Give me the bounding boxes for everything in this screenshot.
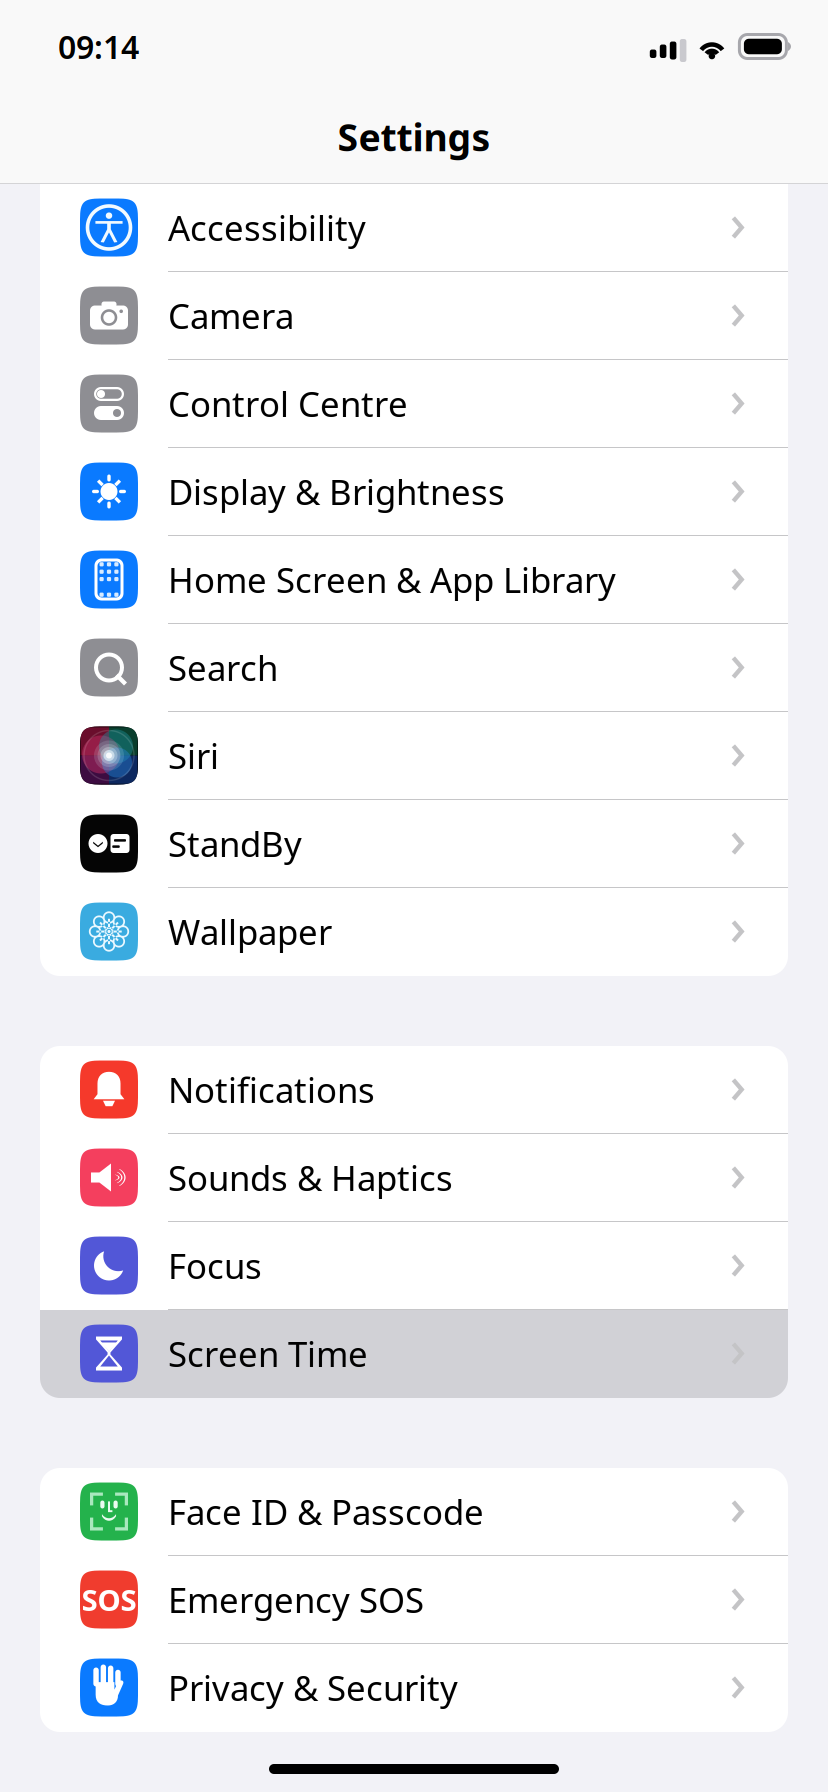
button[interactable]: SOS [40, 1556, 788, 1644]
staticText: Settings [337, 112, 490, 161]
staticText: Home Screen & App Library [168, 556, 616, 602]
button[interactable]: Notifications [40, 1046, 788, 1134]
button[interactable]: Search [40, 624, 788, 712]
staticText: Screen Time [168, 1330, 368, 1376]
staticText: Focus [168, 1242, 262, 1288]
staticText: Search [168, 644, 278, 690]
staticText: StandBy [168, 820, 302, 866]
staticText: Siri [168, 732, 219, 778]
staticText: Wallpaper [168, 908, 332, 954]
button[interactable]: Face ID & Passcode [40, 1468, 788, 1556]
staticText: 09:14 [58, 25, 139, 68]
staticText: Emergency SOS [168, 1576, 424, 1622]
staticText: Sounds & Haptics [168, 1154, 453, 1200]
button[interactable]: StandBy [40, 800, 788, 888]
staticText: Face ID & Passcode [168, 1488, 484, 1534]
button[interactable]: Focus [40, 1222, 788, 1310]
button[interactable]: Control Centre [40, 360, 788, 448]
button[interactable]: Siri [40, 712, 788, 800]
staticText: Privacy & Security [168, 1664, 458, 1710]
staticText: Display & Brightness [168, 468, 505, 514]
staticText: Control Centre [168, 380, 408, 426]
staticText: SOS [81, 1580, 136, 1619]
button[interactable]: Privacy & Security [40, 1644, 788, 1732]
button[interactable]: Display & Brightness [40, 448, 788, 536]
button[interactable]: Wallpaper [40, 888, 788, 976]
staticText: Notifications [168, 1066, 375, 1112]
staticText: Camera [168, 292, 294, 338]
button[interactable]: Home Screen & App Library [40, 536, 788, 624]
button[interactable]: Screen Time [40, 1310, 788, 1398]
button[interactable]: Accessibility [40, 184, 788, 272]
button[interactable]: Camera [40, 272, 788, 360]
button[interactable]: Sounds & Haptics [40, 1134, 788, 1222]
staticText: Accessibility [168, 204, 366, 250]
